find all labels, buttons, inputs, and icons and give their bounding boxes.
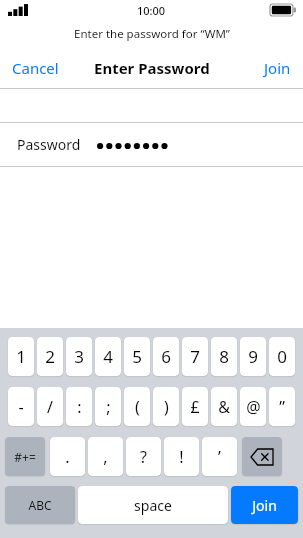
button[interactable]: ! <box>164 437 199 476</box>
button[interactable]: #+= <box>5 437 45 476</box>
button[interactable]: & <box>211 387 237 426</box>
staticText: ; <box>106 396 111 418</box>
button[interactable]: Password <box>0 123 303 166</box>
button[interactable]: ( <box>124 387 150 426</box>
staticText: ” <box>279 396 285 418</box>
button[interactable]: 7 <box>182 337 208 376</box>
staticText: Password <box>17 135 81 154</box>
staticText: & <box>218 396 230 418</box>
button[interactable]: ; <box>95 387 121 426</box>
button[interactable]: 5 <box>124 337 150 376</box>
staticText: 1 <box>16 345 26 368</box>
staticText: , <box>103 446 108 468</box>
staticText: 8 <box>219 345 229 368</box>
staticText: ) <box>164 396 169 418</box>
staticText: 5 <box>132 345 142 368</box>
button[interactable]: 0 <box>269 337 295 376</box>
staticText: 3 <box>74 345 84 368</box>
staticText: 7 <box>190 345 200 368</box>
button[interactable]: 4 <box>95 337 121 376</box>
staticText: 10:00 <box>137 3 166 18</box>
staticText: ! <box>179 446 184 468</box>
button[interactable]: ’ <box>202 437 237 476</box>
staticText: space <box>134 496 172 515</box>
staticText: . <box>65 446 70 468</box>
staticText: : <box>77 396 82 418</box>
staticText: Join <box>252 496 277 515</box>
button[interactable]: @ <box>240 387 266 426</box>
staticText: ABC <box>28 497 52 513</box>
button[interactable]: space <box>78 486 228 524</box>
button[interactable]: , <box>88 437 123 476</box>
button[interactable]: 2 <box>37 337 63 376</box>
staticText: - <box>18 396 24 418</box>
staticText: ’ <box>218 446 221 468</box>
button[interactable]: Join <box>231 486 298 524</box>
button[interactable]: Cancel <box>6 52 65 84</box>
button[interactable]: 1 <box>8 337 34 376</box>
staticText: Join <box>264 58 291 78</box>
staticText: 0 <box>277 345 287 368</box>
staticText: £ <box>190 396 200 418</box>
staticText: 9 <box>248 345 258 368</box>
staticText: @ <box>246 396 261 418</box>
staticText: / <box>47 396 53 418</box>
staticText: Cancel <box>12 58 59 78</box>
staticText: ? <box>140 446 147 468</box>
staticText: #+= <box>14 449 36 465</box>
staticText: ( <box>135 396 140 418</box>
button[interactable]: 8 <box>211 337 237 376</box>
button[interactable]: 9 <box>240 337 266 376</box>
button[interactable]: / <box>37 387 63 426</box>
staticText: 2 <box>45 345 55 368</box>
button[interactable]: ? <box>126 437 161 476</box>
staticText: 4 <box>103 345 113 368</box>
button[interactable]: Join <box>258 52 297 84</box>
button[interactable]: 6 <box>153 337 179 376</box>
button[interactable]: ABC <box>5 486 75 524</box>
staticText: Enter the password for “WM” <box>74 26 230 42</box>
staticText: Enter Password <box>94 58 210 78</box>
button[interactable]: . <box>50 437 85 476</box>
button[interactable]: ” <box>269 387 295 426</box>
button[interactable]: ) <box>153 387 179 426</box>
button[interactable]: Backspace <box>242 437 282 476</box>
button[interactable]: 3 <box>66 337 92 376</box>
button[interactable]: : <box>66 387 92 426</box>
staticText: 6 <box>161 345 171 368</box>
button[interactable]: - <box>8 387 34 426</box>
button[interactable]: £ <box>182 387 208 426</box>
